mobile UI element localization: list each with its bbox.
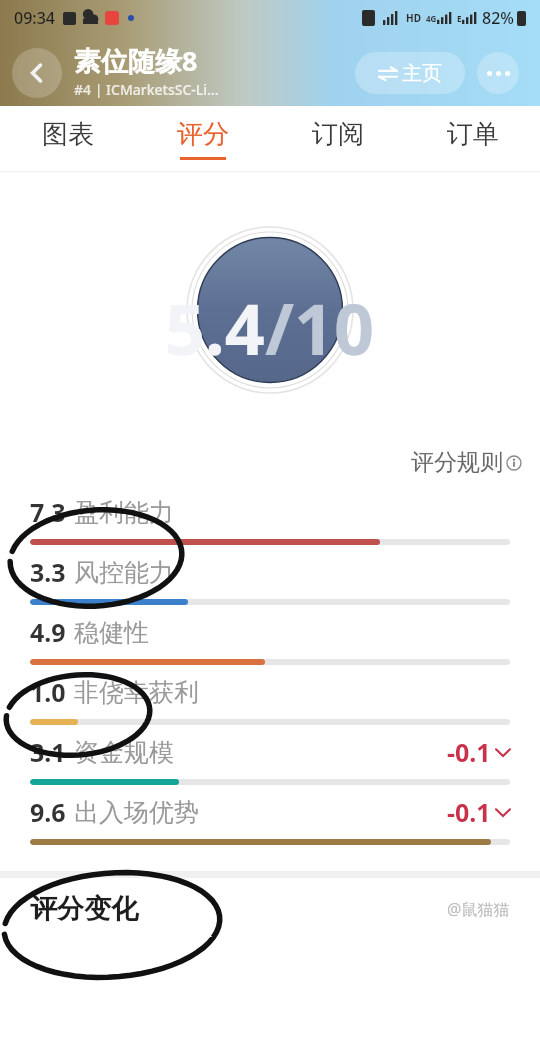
staticText: 风控能力 xyxy=(74,557,174,588)
staticText: 1.0 xyxy=(30,675,66,709)
button[interactable]: 评分规则 xyxy=(411,448,522,477)
button[interactable]: 9.6 xyxy=(0,785,540,845)
staticText: /10 xyxy=(265,280,375,375)
staticText: 3.3 xyxy=(30,555,66,589)
button[interactable]: 3.3 xyxy=(0,545,540,605)
staticText: 订阅 xyxy=(312,118,364,151)
staticText: 5.4 xyxy=(165,280,265,375)
button[interactable]: 7.3 xyxy=(0,485,540,545)
button[interactable]: 订单 xyxy=(405,106,540,172)
button[interactable]: 评分 xyxy=(135,106,270,172)
staticText: 素位随缘8 xyxy=(74,42,198,79)
staticText: 评分变化 xyxy=(30,892,138,926)
staticText: 出入场优势 xyxy=(74,797,199,828)
button[interactable]: 订阅 xyxy=(270,106,405,172)
button[interactable]: More options xyxy=(477,52,519,94)
button[interactable]: 图表 xyxy=(0,106,135,172)
staticText: 评分 xyxy=(177,118,229,151)
staticText: 图表 xyxy=(42,118,94,151)
staticText: 盈利能力 xyxy=(74,497,174,528)
staticText: 82% xyxy=(482,7,514,29)
button[interactable]: 3.1 xyxy=(0,725,540,785)
staticText: E xyxy=(457,13,462,24)
staticText: 资金规模 xyxy=(74,737,174,768)
button[interactable]: 4.9 xyxy=(0,605,540,665)
staticText: 订单 xyxy=(447,118,499,151)
staticText: #4 | ICMarketsSC-Li... xyxy=(74,80,219,99)
button[interactable]: Back xyxy=(12,48,62,98)
staticText: 7.3 xyxy=(30,495,66,529)
staticText: 稳健性 xyxy=(74,617,149,648)
staticText: 4.9 xyxy=(30,615,66,649)
staticText: 评分规则 xyxy=(411,448,503,477)
staticText: 主页 xyxy=(402,61,442,86)
staticText: 4G xyxy=(426,13,437,24)
button[interactable]: 主页 xyxy=(355,52,465,94)
staticText: -0.1 xyxy=(447,735,491,769)
staticText: @鼠猫猫 xyxy=(447,898,510,920)
staticText: HD xyxy=(406,11,421,25)
staticText: 非侥幸获利 xyxy=(74,677,199,708)
staticText: 3.1 xyxy=(30,735,66,769)
button[interactable]: 1.0 xyxy=(0,665,540,725)
staticText: 9.6 xyxy=(30,795,66,829)
staticText: 09:34 xyxy=(14,7,55,29)
staticText: -0.1 xyxy=(447,795,491,829)
